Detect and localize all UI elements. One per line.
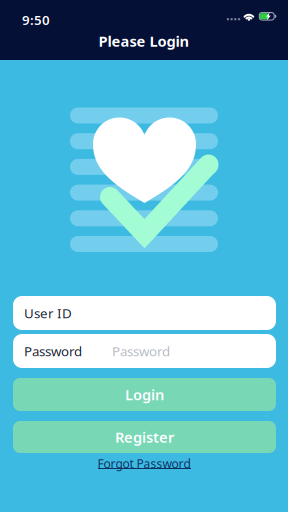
staticText: Register [115,427,174,447]
button[interactable]: Login [13,378,276,411]
staticText: Please Login [98,31,189,51]
staticText: Forgot Password [97,455,190,471]
button[interactable]: Forgot Password [0,456,288,478]
staticText: User ID [24,304,72,322]
staticText: 9:50 [22,11,50,29]
staticText: Password [24,342,82,360]
button[interactable]: Register [13,421,276,453]
staticText: Login [125,385,164,404]
staticText: Password [112,342,170,360]
